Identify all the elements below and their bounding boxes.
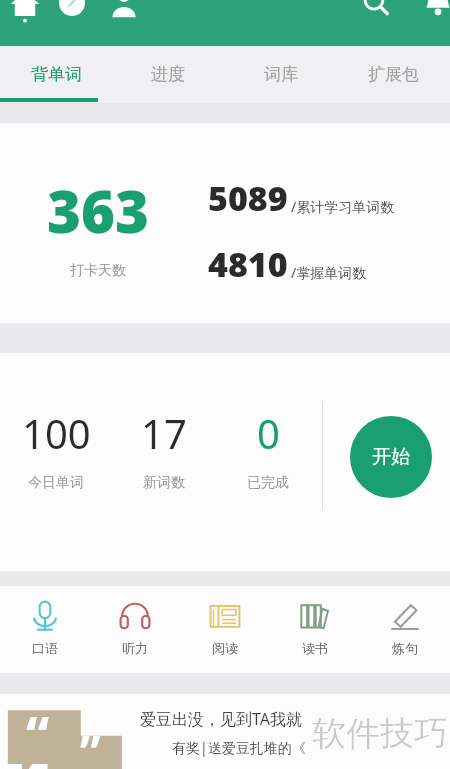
button[interactable]: 读书 [270, 586, 360, 673]
staticText: 0 [257, 406, 280, 460]
staticText: ” [80, 720, 101, 769]
staticText: 4810 [208, 241, 288, 287]
button[interactable]: 听力 [90, 586, 180, 673]
staticText: 打卡天数 [70, 262, 126, 280]
staticText: “ [26, 698, 50, 769]
staticText: 听力 [122, 640, 148, 656]
staticText: 词库 [264, 64, 298, 85]
staticText: 5089 [208, 175, 288, 221]
button[interactable]: 词库 [224, 46, 337, 103]
button[interactable]: 17 [118, 406, 210, 492]
staticText: 炼句 [392, 640, 418, 656]
staticText: 进度 [151, 64, 185, 85]
staticText: 开始 [372, 445, 410, 469]
staticText: 阅读 [212, 640, 238, 656]
staticText: 363 [47, 171, 149, 250]
button[interactable]: Notifications [421, 0, 450, 20]
button[interactable]: Search [359, 0, 393, 20]
button[interactable]: “ [0, 694, 450, 769]
button[interactable]: 阅读 [180, 586, 270, 673]
button[interactable]: 开始 [350, 416, 432, 498]
staticText: 背单词 [31, 64, 82, 85]
button[interactable]: 背单词 [0, 46, 112, 103]
staticText: 17 [141, 406, 187, 460]
staticText: 新词数 [143, 474, 185, 492]
button[interactable]: 口语 [0, 586, 90, 673]
staticText: 100 [22, 406, 91, 460]
staticText: /掌握单词数 [291, 263, 367, 282]
staticText: 有奖|送爱豆扎堆的《 [172, 738, 306, 757]
staticText: 已完成 [247, 474, 289, 492]
button[interactable]: 进度 [112, 46, 224, 103]
button[interactable]: 363 [0, 123, 450, 323]
staticText: 扩展包 [368, 64, 419, 85]
button[interactable]: 扩展包 [337, 46, 450, 103]
button[interactable]: 炼句 [360, 586, 450, 673]
button[interactable]: Discover [55, 0, 89, 20]
button[interactable]: 100 [10, 406, 102, 492]
staticText: /累计学习单词数 [291, 197, 395, 216]
staticText: 读书 [302, 640, 328, 656]
button[interactable]: Home [8, 0, 42, 20]
staticText: 口语 [32, 640, 58, 656]
staticText: 软件技巧 [312, 712, 448, 755]
button[interactable]: 0 [222, 406, 314, 492]
staticText: 爱豆出没，见到TA我就 [140, 708, 303, 730]
staticText: 今日单词 [28, 474, 84, 492]
button[interactable]: Profile [107, 0, 141, 20]
